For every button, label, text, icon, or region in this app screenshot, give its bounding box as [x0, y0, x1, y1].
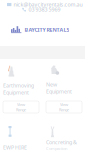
button[interactable]: View: [46, 101, 82, 113]
staticText: BAYCITY RENTALS: [24, 26, 69, 33]
button[interactable]: Concreting &: [46, 121, 82, 151]
button[interactable]: EWP HIRE: [3, 121, 39, 151]
staticText: Compaction: [46, 146, 67, 151]
staticText: 03 9383 5969: [28, 6, 60, 13]
staticText: EWP HIRE: [3, 144, 27, 151]
staticText: Range: [59, 107, 69, 112]
staticText: Earthmoving: [3, 82, 34, 89]
staticText: Equipment: [46, 88, 72, 95]
staticText: View: [17, 102, 25, 107]
staticText: Equipment: [3, 89, 29, 96]
staticText: New: [46, 81, 57, 88]
button[interactable]: 03 9383 5969: [22, 6, 60, 13]
button[interactable]: New: [46, 65, 82, 113]
staticText: View: [60, 102, 68, 107]
staticText: nick@baycityrentals.com.au: [13, 1, 82, 8]
staticText: Range: [16, 107, 26, 112]
button[interactable]: nick@baycityrentals.com.au: [7, 1, 82, 8]
button[interactable]: BAYCITY RENTALS: [11, 26, 69, 33]
button[interactable]: View: [3, 101, 39, 113]
staticText: Concreting &: [46, 139, 77, 146]
button[interactable]: Earthmoving: [3, 65, 39, 113]
